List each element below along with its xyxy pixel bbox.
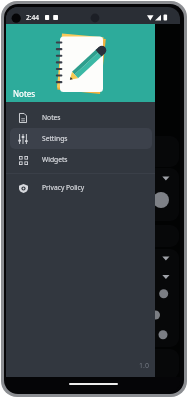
button[interactable]: Widgets xyxy=(10,149,152,170)
button[interactable] xyxy=(10,168,179,221)
button[interactable]: Privacy Policy xyxy=(10,177,152,198)
button[interactable]: Note action xyxy=(153,192,169,208)
staticText: Notes xyxy=(13,88,36,99)
staticText: Settings xyxy=(42,134,68,143)
staticText: Widgets xyxy=(42,155,68,164)
staticText: 2:44 xyxy=(26,13,40,22)
staticText: Notes xyxy=(42,113,61,122)
button[interactable] xyxy=(10,349,179,379)
button[interactable] xyxy=(10,225,179,247)
button[interactable]: Notes xyxy=(10,107,152,128)
staticText: Privacy Policy xyxy=(42,183,85,192)
staticText: 1.0 xyxy=(139,361,149,371)
button[interactable]: Settings xyxy=(10,128,152,149)
button[interactable] xyxy=(10,136,179,167)
button[interactable] xyxy=(10,249,179,347)
